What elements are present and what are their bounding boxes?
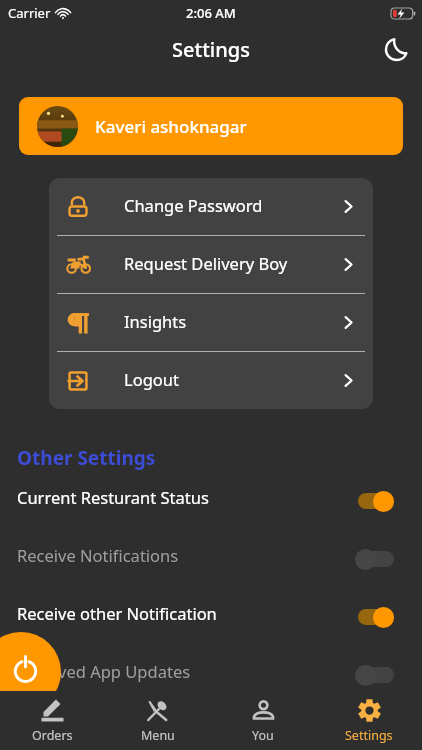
staticText: Change Password <box>124 194 263 216</box>
staticText: Logout <box>124 368 179 390</box>
button[interactable]: Receive Notifications <box>0 526 422 584</box>
button[interactable]: Orders <box>0 691 105 750</box>
button[interactable]: Current Resturant Status <box>0 468 422 526</box>
button[interactable]: You <box>210 691 316 750</box>
staticText: Settings <box>172 36 250 63</box>
button[interactable]: Settings <box>316 691 422 750</box>
staticText: Current Resturant Status <box>17 486 209 508</box>
button[interactable]: Kaveri ashoknagar <box>19 97 403 155</box>
staticText: Receive other Notification <box>17 602 217 624</box>
staticText: Menu <box>141 727 175 744</box>
staticText: Request Delivery Boy <box>124 252 288 274</box>
button[interactable]: Menu <box>105 691 210 750</box>
staticText: You <box>252 727 274 744</box>
button[interactable]: Received App Updates <box>0 642 422 700</box>
button[interactable]: Dark mode <box>382 34 412 64</box>
staticText: Orders <box>32 727 73 744</box>
button[interactable]: Power <box>0 632 61 712</box>
staticText: Carrier <box>8 4 51 22</box>
staticText: Receive Notifications <box>17 544 179 566</box>
staticText: Kaveri ashoknagar <box>95 115 247 138</box>
staticText: 2:06 AM <box>186 4 236 22</box>
button[interactable]: Receive other Notification <box>0 584 422 642</box>
button[interactable]: Request Delivery Boy <box>49 236 373 293</box>
staticText: Other Settings <box>17 445 156 471</box>
staticText: Insights <box>124 310 187 332</box>
button[interactable]: Logout <box>49 352 373 409</box>
button[interactable]: Insights <box>49 294 373 351</box>
staticText: Received App Updates <box>17 660 191 682</box>
button[interactable]: Change Password <box>49 178 373 235</box>
staticText: Settings <box>345 727 393 744</box>
